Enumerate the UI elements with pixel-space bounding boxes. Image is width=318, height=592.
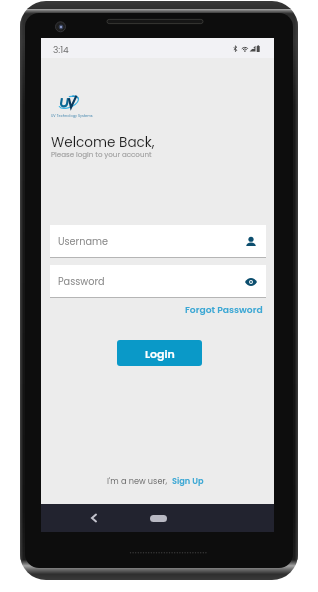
staticText: Please login to your account <box>51 150 152 160</box>
staticText: I'm a new user, <box>107 475 168 486</box>
button[interactable]: Password <box>50 265 266 298</box>
staticText: Login <box>145 346 175 361</box>
button[interactable]: Show password <box>245 276 257 288</box>
button[interactable]: Home <box>150 515 167 522</box>
staticText: Welcome Back, <box>51 133 155 152</box>
staticText: 3:14 <box>53 44 69 57</box>
button[interactable]: Forgot Password <box>246 301 318 314</box>
staticText: Password <box>58 275 105 289</box>
staticText: Username <box>58 235 108 249</box>
button[interactable]: Username <box>50 225 266 258</box>
button[interactable]: Login <box>117 340 202 366</box>
button[interactable]: Account <box>245 236 257 248</box>
button[interactable]: Sign Up <box>172 475 204 486</box>
staticText: Forgot Password <box>185 303 263 316</box>
button[interactable]: Back <box>83 504 105 532</box>
staticText: UV Technology Systems <box>51 113 93 118</box>
